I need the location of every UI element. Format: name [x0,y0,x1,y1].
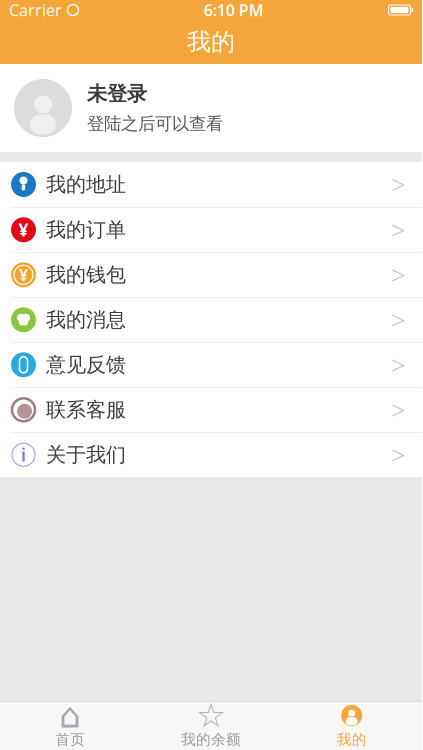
staticText: 首页 [55,730,85,748]
button[interactable]: 意见反馈 [0,342,422,387]
staticText: 登陆之后可以查看 [87,113,223,134]
staticText: > [391,393,405,427]
staticText: 我的消息 [46,307,126,332]
staticText: ⌂ [59,696,81,735]
staticText: 意见反馈 [46,352,126,377]
staticText: Carrier [9,0,62,21]
staticText: 未登录 [87,82,147,106]
button[interactable]: ¥ [0,252,422,297]
staticText: > [391,303,405,337]
button[interactable]: 我的地址 [0,162,422,207]
staticText: > [391,168,405,201]
staticText: > [391,348,405,382]
staticText: 我的余额 [181,730,241,748]
staticText: 我的 [337,730,367,748]
staticText: > [391,213,405,247]
button[interactable]: ¥ [0,207,422,252]
staticText: ¥ [19,264,28,285]
button[interactable]: 联系客服 [0,387,422,432]
staticText: 我的钱包 [46,262,126,287]
staticText: 6:10 PM [204,0,264,21]
button[interactable]: 我的消息 [0,297,422,342]
button[interactable]: 我的 [281,702,422,750]
button[interactable]: ☆ [141,702,281,750]
button[interactable]: i [0,432,422,477]
staticText: > [391,438,405,472]
staticText: 我的 [187,27,235,57]
staticText: 我的地址 [46,172,126,197]
staticText: ¥ [18,218,28,241]
button[interactable]: ⌂ [0,702,141,750]
staticText: > [391,258,405,292]
staticText: 关于我们 [46,442,126,467]
staticText: i [21,443,26,466]
button[interactable]: 未登录 [0,64,422,152]
staticText: 我的订单 [46,217,126,242]
staticText: ☆ [196,697,226,734]
staticText: 联系客服 [46,397,126,422]
